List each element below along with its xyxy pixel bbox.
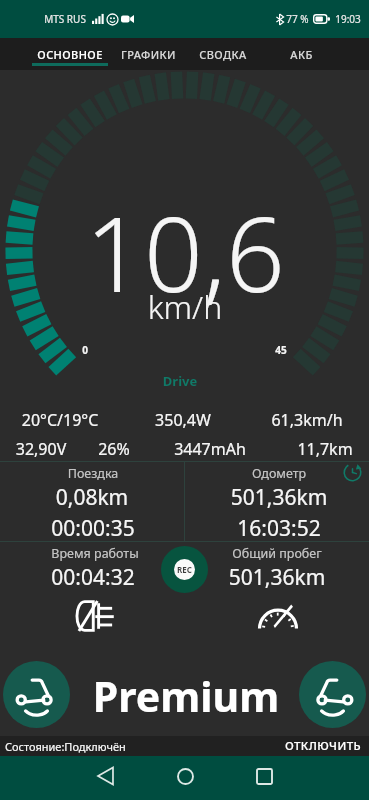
- button[interactable]: ОТКЛЮЧИТЬ: [240, 738, 369, 754]
- staticText: 26%: [0, 438, 234, 460]
- staticText: Время работы: [0, 545, 215, 562]
- button[interactable]: [0, 462, 184, 541]
- staticText: 11,7km: [205, 438, 369, 460]
- button[interactable]: Recent apps: [244, 756, 284, 796]
- staticText: 32,90V: [0, 438, 161, 460]
- staticText: 501,36km: [157, 563, 369, 592]
- staticText: 20°C/19°C: [0, 409, 180, 431]
- staticText: ОТКЛЮЧИТЬ: [284, 738, 361, 754]
- staticText: Поездка: [0, 465, 213, 482]
- button[interactable]: Reset trip counters: [343, 463, 362, 482]
- staticText: 350,4W: [63, 409, 303, 431]
- staticText: Premium: [46, 668, 326, 724]
- staticText: 61,3km/h: [187, 409, 369, 431]
- button[interactable]: Home: [165, 756, 205, 796]
- button[interactable]: [185, 462, 369, 541]
- button[interactable]: Back: [85, 756, 125, 796]
- button[interactable]: ГРАФИКИ: [110, 38, 186, 70]
- staticText: ОСНОВНОЕ: [37, 47, 103, 62]
- staticText: 16:03:52: [159, 514, 369, 543]
- staticText: Одометр: [159, 465, 369, 482]
- staticText: 0,08km: [0, 483, 212, 512]
- button[interactable]: Record: [161, 546, 208, 593]
- staticText: 45: [261, 343, 301, 357]
- button[interactable]: АКБ: [262, 38, 340, 70]
- staticText: Состояние:Подключён: [5, 739, 126, 754]
- staticText: Drive: [120, 372, 240, 390]
- staticText: 00:00:35: [0, 514, 213, 543]
- staticText: REC: [177, 564, 192, 575]
- staticText: 0: [65, 343, 105, 357]
- staticText: km/h: [85, 285, 285, 329]
- staticText: АКБ: [290, 47, 313, 62]
- staticText: MTS RUS: [44, 12, 86, 26]
- button[interactable]: Scooter profile 1: [3, 661, 70, 728]
- staticText: СВОДКА: [199, 47, 247, 62]
- staticText: 3447mAh: [90, 438, 330, 460]
- button[interactable]: Cruise control: [250, 594, 306, 638]
- staticText: 00:04:32: [0, 563, 213, 592]
- staticText: Общий пробег: [157, 545, 369, 562]
- button[interactable]: СВОДКА: [186, 38, 260, 70]
- staticText: 501,36km: [159, 483, 369, 512]
- button[interactable]: Headlights off: [66, 594, 122, 638]
- button[interactable]: Scooter profile 2: [299, 661, 366, 728]
- staticText: 10,6: [35, 182, 335, 322]
- staticText: 19:03: [335, 12, 361, 26]
- staticText: ГРАФИКИ: [121, 47, 176, 62]
- button[interactable]: ОСНОВНОЕ: [32, 38, 108, 70]
- staticText: 77 %: [286, 12, 309, 26]
